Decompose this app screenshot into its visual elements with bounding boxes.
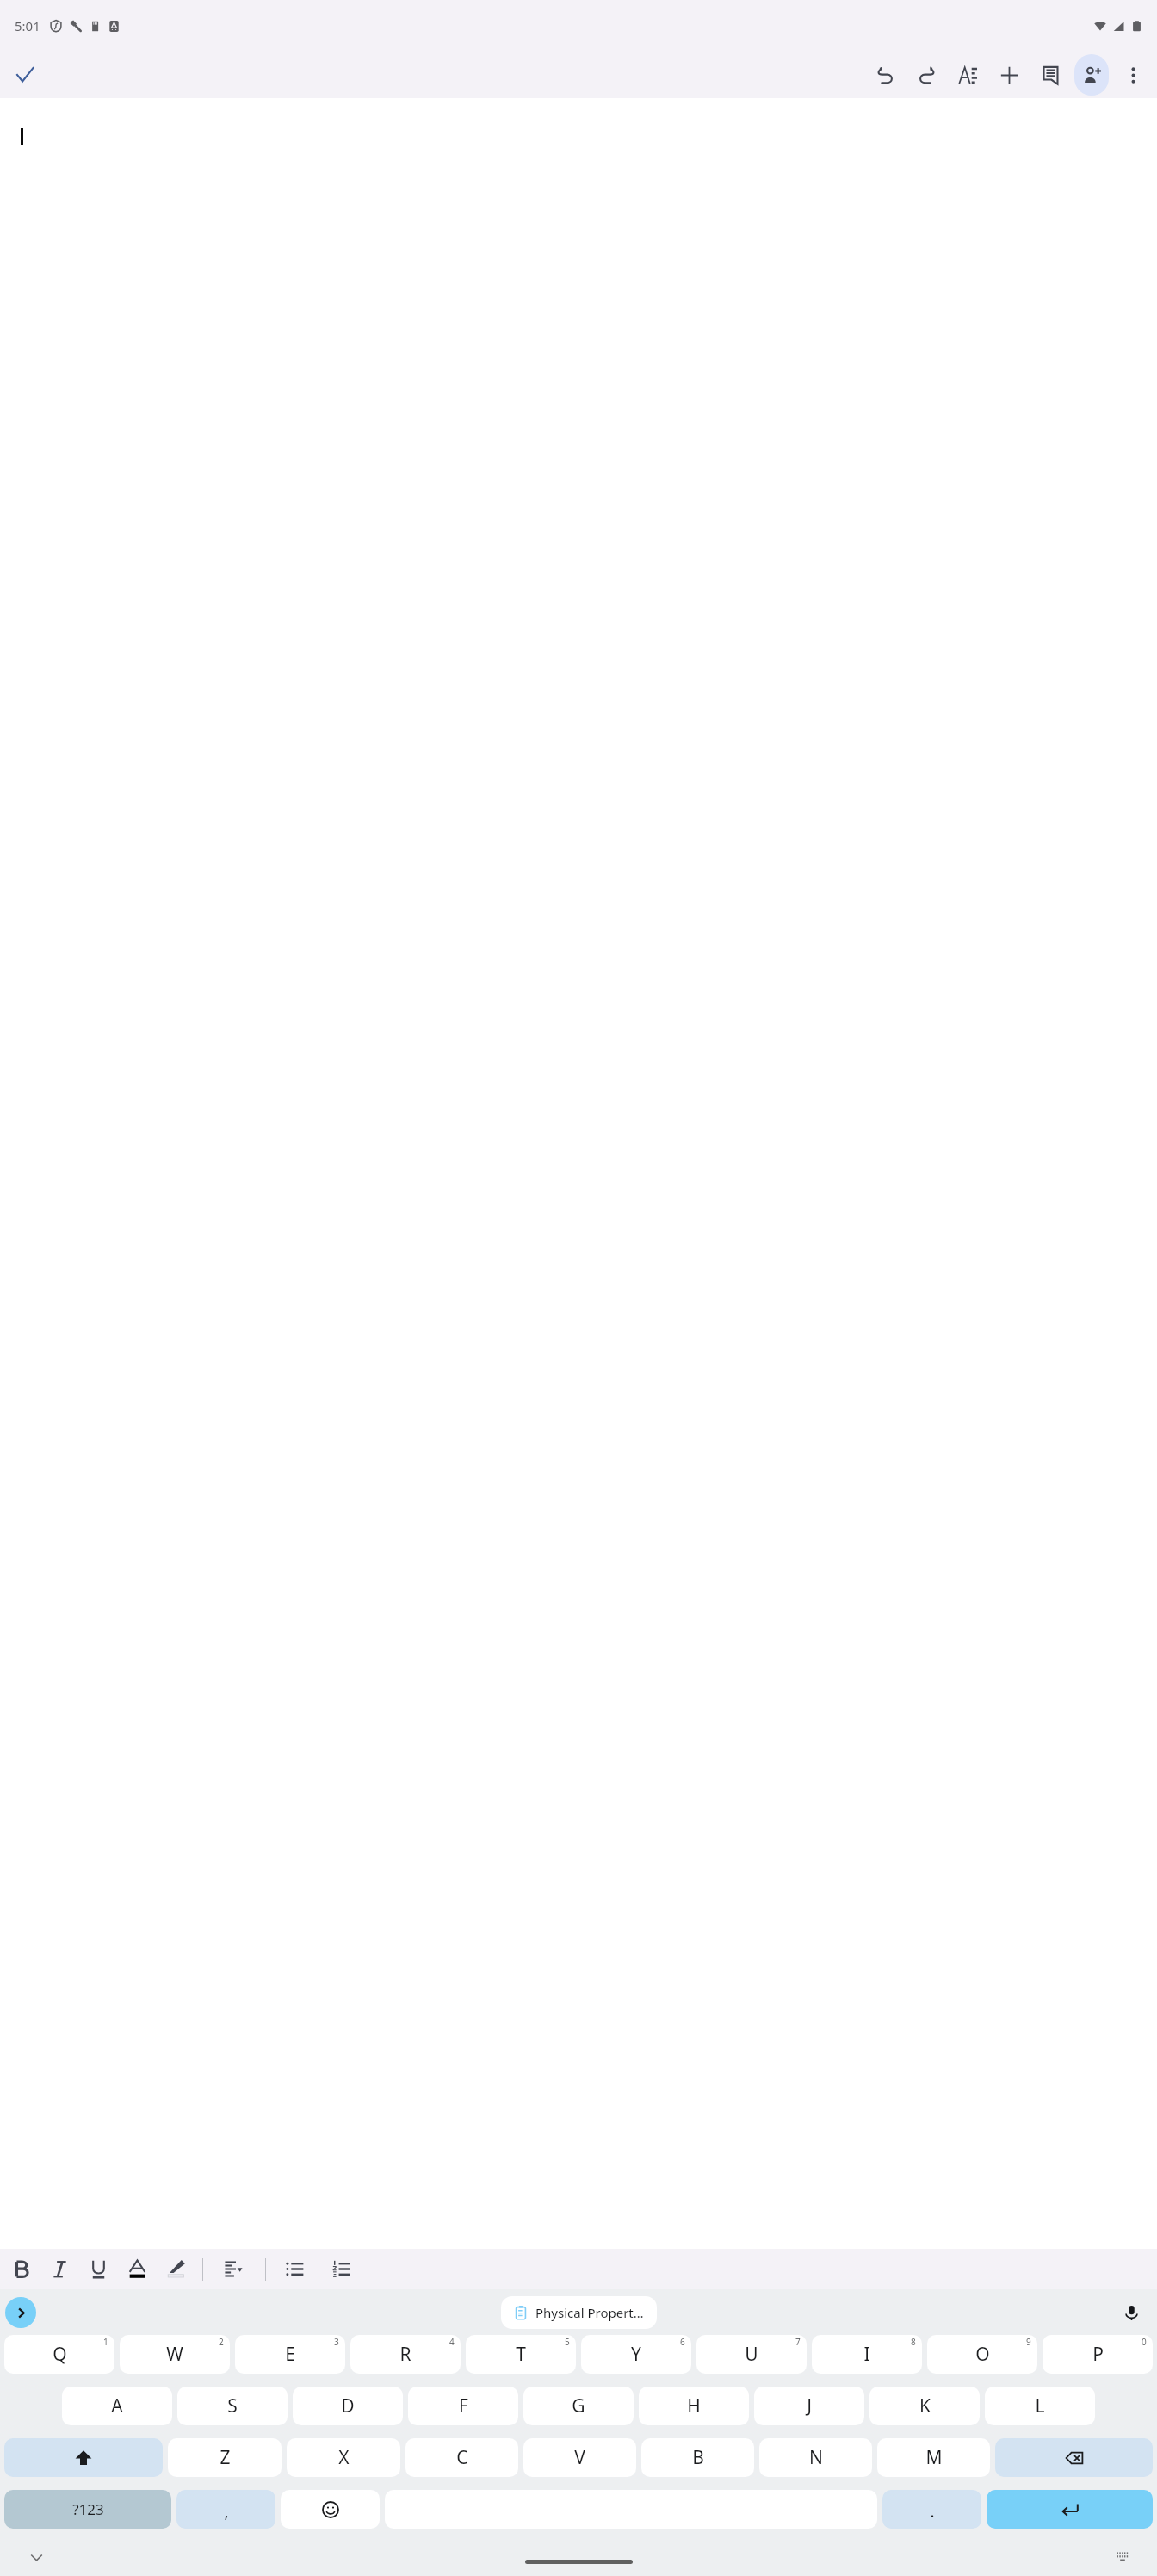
button[interactable]: , (176, 2490, 275, 2529)
staticText: Z (220, 2445, 231, 2470)
button[interactable]: K (869, 2387, 980, 2425)
button[interactable]: X (287, 2438, 400, 2477)
staticText: 2 (219, 2336, 224, 2348)
staticText: 5:01 (15, 17, 40, 34)
button[interactable]: Voice input (1113, 2294, 1149, 2331)
button[interactable]: Comments (1030, 54, 1071, 96)
staticText: J (807, 2393, 812, 2418)
staticText: 3 (334, 2336, 339, 2348)
button[interactable]: E (235, 2335, 345, 2374)
staticText: 4 (449, 2336, 455, 2348)
staticText: E (285, 2342, 295, 2367)
button[interactable]: G (523, 2387, 634, 2425)
button[interactable]: Done (4, 54, 46, 96)
button[interactable]: Change keyboard (1105, 2540, 1140, 2574)
staticText: F (459, 2393, 468, 2418)
staticText: R (399, 2342, 411, 2367)
staticText: U (745, 2342, 758, 2367)
staticText: P (1092, 2342, 1104, 2367)
staticText: N (809, 2445, 823, 2470)
button[interactable]: Physical Propert… (501, 2296, 657, 2329)
button[interactable]: Emoji (281, 2490, 380, 2529)
staticText: K (919, 2393, 931, 2418)
button[interactable]: . (882, 2490, 981, 2529)
button[interactable]: Backspace (995, 2438, 1153, 2477)
button[interactable]: Q (4, 2335, 114, 2374)
staticText: X (338, 2445, 350, 2470)
staticText: I (863, 2342, 870, 2367)
button[interactable]: More options (1112, 54, 1154, 96)
button[interactable]: Expand toolbar (5, 2297, 36, 2328)
staticText: C (456, 2445, 468, 2470)
button[interactable]: Redo (906, 54, 947, 96)
button[interactable]: I (812, 2335, 922, 2374)
staticText: D (341, 2393, 355, 2418)
staticText: Y (631, 2342, 641, 2367)
button[interactable]: S (177, 2387, 288, 2425)
staticText: W (166, 2342, 183, 2367)
staticText: M (925, 2445, 943, 2470)
button[interactable]: H (639, 2387, 749, 2425)
staticText: 6 (680, 2336, 685, 2348)
staticText: . (930, 2500, 935, 2523)
button[interactable]: Underline (79, 2249, 118, 2289)
button[interactable]: A (62, 2387, 172, 2425)
staticText: Physical Propert… (535, 2304, 644, 2321)
button[interactable]: Bold (2, 2249, 40, 2289)
button[interactable]: Bulleted list (275, 2249, 314, 2289)
staticText: 0 (1142, 2336, 1147, 2348)
button[interactable]: Alignment (214, 2249, 253, 2289)
button[interactable]: F (408, 2387, 518, 2425)
staticText: 7 (795, 2336, 801, 2348)
staticText: G (572, 2393, 585, 2418)
button[interactable]: U (696, 2335, 807, 2374)
staticText: A (111, 2393, 123, 2418)
button[interactable]: J (754, 2387, 864, 2425)
button[interactable]: Shift (4, 2438, 163, 2477)
button[interactable]: Italic (40, 2249, 79, 2289)
staticText: 5 (565, 2336, 570, 2348)
button[interactable]: Hide keyboard (19, 2540, 53, 2574)
button[interactable]: T (466, 2335, 576, 2374)
button[interactable]: V (523, 2438, 636, 2477)
button[interactable]: R (350, 2335, 461, 2374)
staticText: ?123 (72, 2499, 104, 2519)
button[interactable]: P (1043, 2335, 1153, 2374)
button[interactable]: Insert (988, 54, 1030, 96)
staticText: B (692, 2445, 704, 2470)
staticText: 9 (1026, 2336, 1031, 2348)
button[interactable]: ?123 (4, 2490, 171, 2529)
staticText: 8 (911, 2336, 916, 2348)
button[interactable]: Z (168, 2438, 282, 2477)
staticText: , (224, 2500, 229, 2523)
button[interactable]: Y (581, 2335, 691, 2374)
button[interactable]: M (877, 2438, 990, 2477)
button[interactable]: Numbered list (322, 2249, 361, 2289)
staticText: L (1035, 2393, 1045, 2418)
button[interactable]: Text formatting (947, 54, 988, 96)
button[interactable]: D (293, 2387, 403, 2425)
button[interactable]: C (405, 2438, 518, 2477)
button[interactable]: L (985, 2387, 1095, 2425)
button[interactable]: Share (1071, 54, 1112, 96)
staticText: H (687, 2393, 701, 2418)
button[interactable]: N (759, 2438, 872, 2477)
button[interactable]: Text color (118, 2249, 157, 2289)
staticText: 1 (103, 2336, 108, 2348)
staticText: Q (53, 2342, 67, 2367)
button[interactable]: Enter (987, 2490, 1153, 2529)
staticText: S (227, 2393, 238, 2418)
button[interactable]: B (641, 2438, 754, 2477)
button[interactable]: O (927, 2335, 1037, 2374)
button[interactable]: W (120, 2335, 230, 2374)
staticText: V (574, 2445, 585, 2470)
staticText: T (516, 2342, 526, 2367)
button[interactable]: Highlight (157, 2249, 195, 2289)
button[interactable]: Undo (864, 54, 906, 96)
staticText: O (975, 2342, 990, 2367)
